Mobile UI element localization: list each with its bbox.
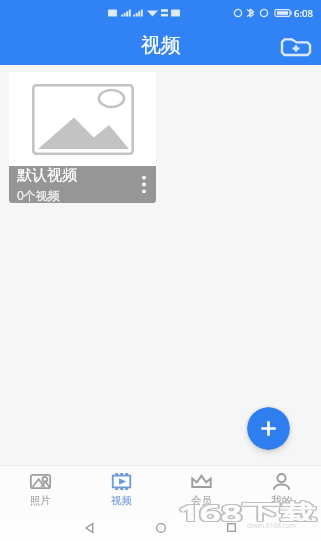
staticText: 168下载 [176, 497, 321, 522]
staticText: 照片 [30, 494, 51, 507]
button[interactable]: 会员 [161, 466, 241, 514]
staticText: 6:08 [294, 7, 313, 20]
button[interactable]: 我的 [241, 466, 321, 514]
staticText: 168下载 [180, 495, 321, 520]
button[interactable]: 照片 [0, 466, 81, 514]
staticText: 会员 [191, 494, 212, 507]
button[interactable]: Home [146, 514, 176, 541]
button[interactable]: 默认视频 [9, 72, 156, 203]
staticText: 我的 [271, 494, 292, 507]
staticText: 168下载 [178, 495, 321, 520]
staticText: 默认视频 [17, 166, 77, 185]
staticText: 0个视频 [17, 187, 60, 203]
staticText: 168下载 [180, 497, 321, 522]
staticText: 视频 [111, 494, 132, 507]
staticText: down.it168.com [247, 521, 296, 530]
staticText: 168下载 [178, 496, 321, 521]
staticText: 168下载 [180, 496, 321, 521]
staticText: 视频 [141, 33, 181, 58]
staticText: 168下载 [176, 495, 321, 520]
button[interactable]: Back [75, 514, 105, 541]
button[interactable]: Add [247, 407, 290, 450]
staticText: 168下载 [178, 497, 321, 522]
button[interactable]: 视频 [81, 466, 161, 514]
button[interactable]: More options [132, 166, 156, 203]
staticText: 168下载 [176, 496, 321, 521]
button[interactable]: Recent apps [216, 514, 246, 541]
button[interactable]: New folder [276, 26, 316, 65]
